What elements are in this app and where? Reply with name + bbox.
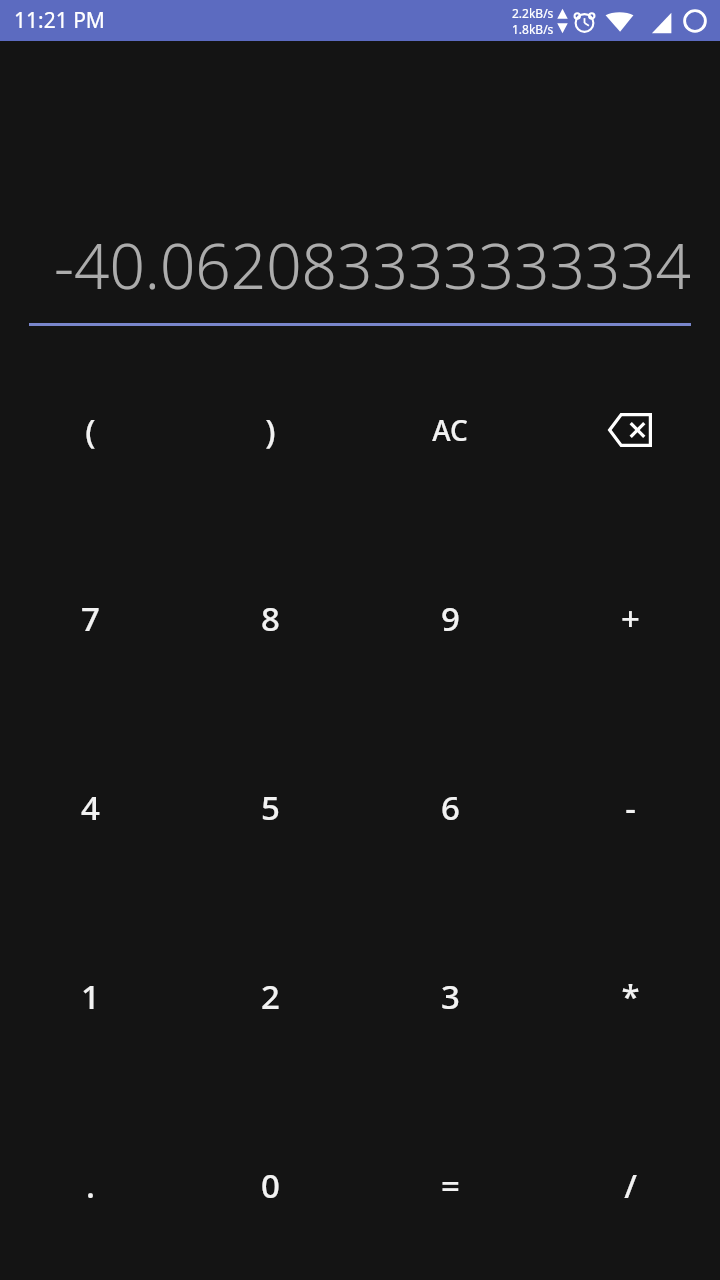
staticText: .	[86, 1163, 95, 1208]
staticText: 9	[441, 596, 460, 641]
button[interactable]: AC	[360, 336, 540, 524]
staticText: -	[625, 785, 636, 830]
button[interactable]: (	[0, 336, 180, 524]
button[interactable]: )	[180, 336, 360, 524]
staticText: *	[621, 974, 640, 1019]
staticText: 2.2kB/s	[512, 5, 554, 21]
staticText: (	[85, 408, 96, 453]
staticText: 5	[261, 785, 280, 830]
staticText: =	[441, 1163, 460, 1208]
staticText: 1	[81, 974, 100, 1019]
staticText: 11:21 PM	[14, 6, 105, 35]
button[interactable]: 2	[180, 902, 360, 1091]
button[interactable]: 5	[180, 713, 360, 902]
staticText: 0	[261, 1163, 280, 1208]
button[interactable]: 1	[0, 902, 180, 1091]
staticText: )	[265, 408, 276, 453]
button[interactable]: 8	[180, 524, 360, 713]
button[interactable]: 3	[360, 902, 540, 1091]
button[interactable]: =	[360, 1091, 540, 1280]
button[interactable]: 9	[360, 524, 540, 713]
staticText: /	[624, 1163, 637, 1208]
staticText: 3	[441, 974, 460, 1019]
button[interactable]: *	[540, 902, 720, 1091]
staticText: -40.062083333333334	[29, 223, 691, 307]
button[interactable]: Backspace	[540, 336, 720, 524]
staticText: 4	[81, 785, 100, 830]
staticText: 6	[441, 785, 460, 830]
button[interactable]: .	[0, 1091, 180, 1280]
staticText: 2	[261, 974, 280, 1019]
button[interactable]: 6	[360, 713, 540, 902]
staticText: 7	[81, 596, 100, 641]
button[interactable]: -	[540, 713, 720, 902]
button[interactable]: 0	[180, 1091, 360, 1280]
button[interactable]: 7	[0, 524, 180, 713]
button[interactable]: +	[540, 524, 720, 713]
button[interactable]: /	[540, 1091, 720, 1280]
staticText: AC	[432, 411, 468, 449]
staticText: +	[621, 596, 640, 641]
staticText: 1.8kB/s	[512, 21, 554, 37]
staticText: 8	[261, 596, 280, 641]
button[interactable]: 4	[0, 713, 180, 902]
